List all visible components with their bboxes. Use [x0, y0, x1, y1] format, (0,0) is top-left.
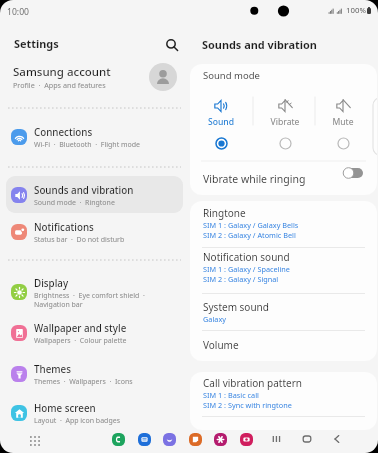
staticText: Status bar · Do not disturb: [34, 235, 125, 245]
button[interactable]: Samsung account: [0, 60, 189, 95]
staticText: Settings: [14, 36, 59, 51]
staticText: Themes · Wallpapers · Icons: [34, 377, 133, 387]
button[interactable]: Sound: [193, 94, 251, 154]
staticText: Brightness · Eye comfort shield · Naviga…: [34, 291, 145, 309]
button[interactable]: Wallpaper and style: [6, 314, 183, 351]
staticText: Themes: [34, 363, 71, 376]
staticText: Wi-Fi · Bluetooth · Flight mode: [34, 140, 141, 150]
button[interactable]: Mute: [315, 94, 373, 154]
button[interactable]: App 5: [240, 433, 253, 446]
button[interactable]: Home: [298, 430, 316, 448]
staticText: Notifications: [34, 221, 94, 234]
button[interactable]: App 0: [112, 433, 125, 446]
staticText: Sounds and vibration: [34, 184, 134, 197]
button[interactable]: Recent apps: [268, 430, 286, 448]
staticText: SIM 1 : Galaxy / Spaceline: [203, 264, 290, 274]
button[interactable]: Connections: [6, 118, 183, 155]
button[interactable]: Call vibration pattern: [203, 376, 371, 410]
button[interactable]: Apps: [24, 430, 44, 450]
button[interactable]: Volume: [203, 338, 371, 352]
staticText: Profile · Apps and features: [13, 80, 106, 90]
staticText: Galaxy: [203, 314, 226, 324]
staticText: Sound mode · Ringtone: [34, 198, 115, 208]
staticText: Display: [34, 277, 69, 290]
staticText: 10:00: [7, 6, 29, 18]
staticText: SIM 2 : Galaxy / Atomic Bell: [203, 230, 296, 240]
staticText: Volume: [203, 338, 239, 352]
button[interactable]: App 4: [214, 433, 227, 446]
button[interactable]: Vibrate while ringing toggle: [344, 166, 366, 180]
staticText: Sound: [192, 116, 250, 128]
staticText: Mute: [314, 116, 372, 128]
button[interactable]: Search: [161, 34, 182, 55]
staticText: System sound: [203, 300, 269, 314]
button[interactable]: Notifications: [6, 213, 183, 250]
staticText: Connections: [34, 126, 93, 139]
button[interactable]: Vibrate while ringing: [190, 162, 377, 195]
button[interactable]: App 3: [189, 433, 202, 446]
staticText: Wallpapers · Colour palette: [34, 336, 127, 346]
staticText: SIM 2 : Sync with ringtone: [203, 400, 292, 410]
button[interactable]: Notification sound: [203, 250, 371, 284]
staticText: Sounds and vibration: [202, 37, 317, 52]
button[interactable]: System sound: [203, 300, 371, 324]
staticText: SIM 1 : Basic call: [203, 390, 259, 400]
button[interactable]: App 2: [163, 433, 176, 446]
staticText: Vibrate: [256, 116, 314, 128]
staticText: Samsung account: [13, 64, 111, 80]
button[interactable]: Home screen: [6, 394, 183, 431]
staticText: Home screen: [34, 402, 96, 415]
staticText: Layout · App icon badges: [34, 416, 121, 426]
staticText: SIM 1 : Galaxy / Galaxy Bells: [203, 220, 299, 230]
button[interactable]: Sounds and vibration: [6, 176, 183, 213]
button[interactable]: Themes: [6, 355, 183, 392]
button[interactable]: Display: [6, 270, 183, 314]
button[interactable]: Vibrate: [257, 94, 315, 154]
staticText: Wallpaper and style: [34, 322, 127, 335]
button[interactable]: Back: [328, 430, 346, 448]
staticText: Vibrate while ringing: [203, 172, 306, 186]
staticText: Sound mode: [203, 69, 260, 82]
staticText: Ringtone: [203, 206, 246, 220]
staticText: 100%: [346, 5, 366, 16]
button[interactable]: App 1: [138, 433, 151, 446]
button[interactable]: Ringtone: [203, 206, 371, 240]
staticText: Call vibration pattern: [203, 376, 302, 390]
staticText: SIM 2 : Galaxy / Signal: [203, 274, 279, 284]
staticText: Notification sound: [203, 250, 290, 264]
